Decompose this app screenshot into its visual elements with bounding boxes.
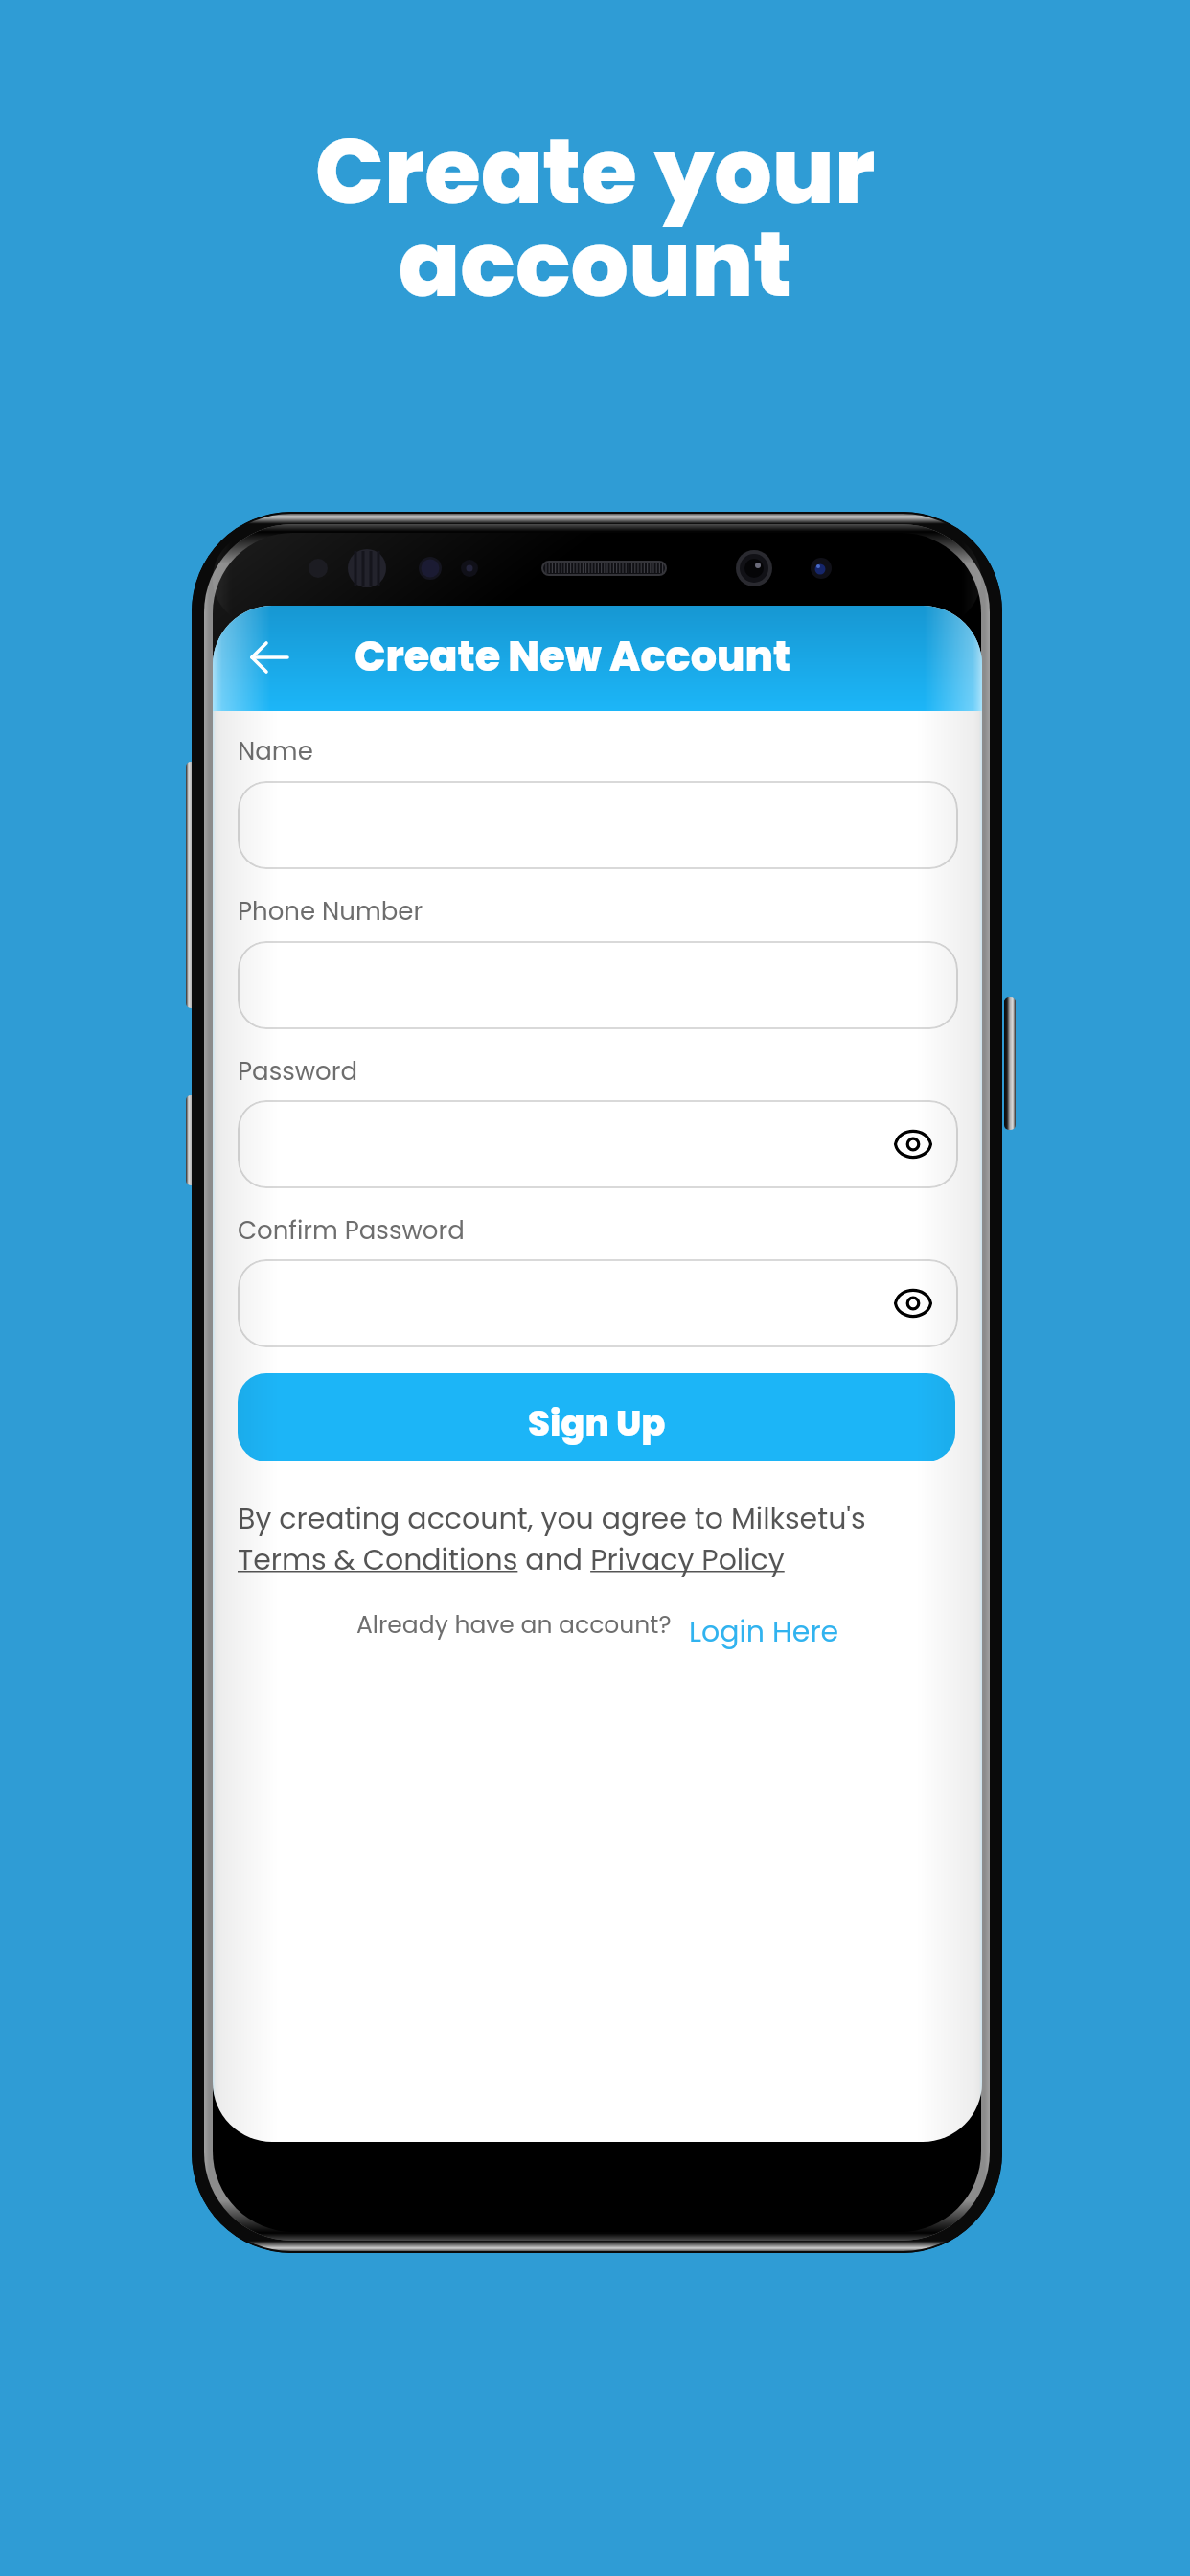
button[interactable]: Back [249, 635, 293, 679]
button[interactable]: Show password [238, 1259, 958, 1347]
staticText: Already have an account? [356, 1608, 672, 1642]
staticText: Sign Up [528, 1398, 666, 1448]
staticText: By creating account, you agree to Milkse… [238, 1499, 958, 1579]
staticText: Password [238, 1054, 358, 1089]
staticText: Create New Account [355, 628, 791, 685]
staticText: Name [238, 734, 313, 769]
button[interactable]: Sign Up [238, 1373, 955, 1461]
button[interactable] [238, 781, 958, 869]
staticText: Phone Number [238, 894, 423, 929]
button[interactable]: Show password [891, 1281, 935, 1325]
button[interactable] [238, 941, 958, 1029]
button[interactable]: Show password [238, 1100, 958, 1188]
button[interactable]: Show password [891, 1122, 935, 1166]
staticText: Confirm Password [238, 1213, 465, 1248]
staticText: Create your account [0, 107, 1190, 328]
staticText: Login Here [689, 1612, 839, 1652]
button[interactable]: Login Here [689, 1612, 839, 1652]
